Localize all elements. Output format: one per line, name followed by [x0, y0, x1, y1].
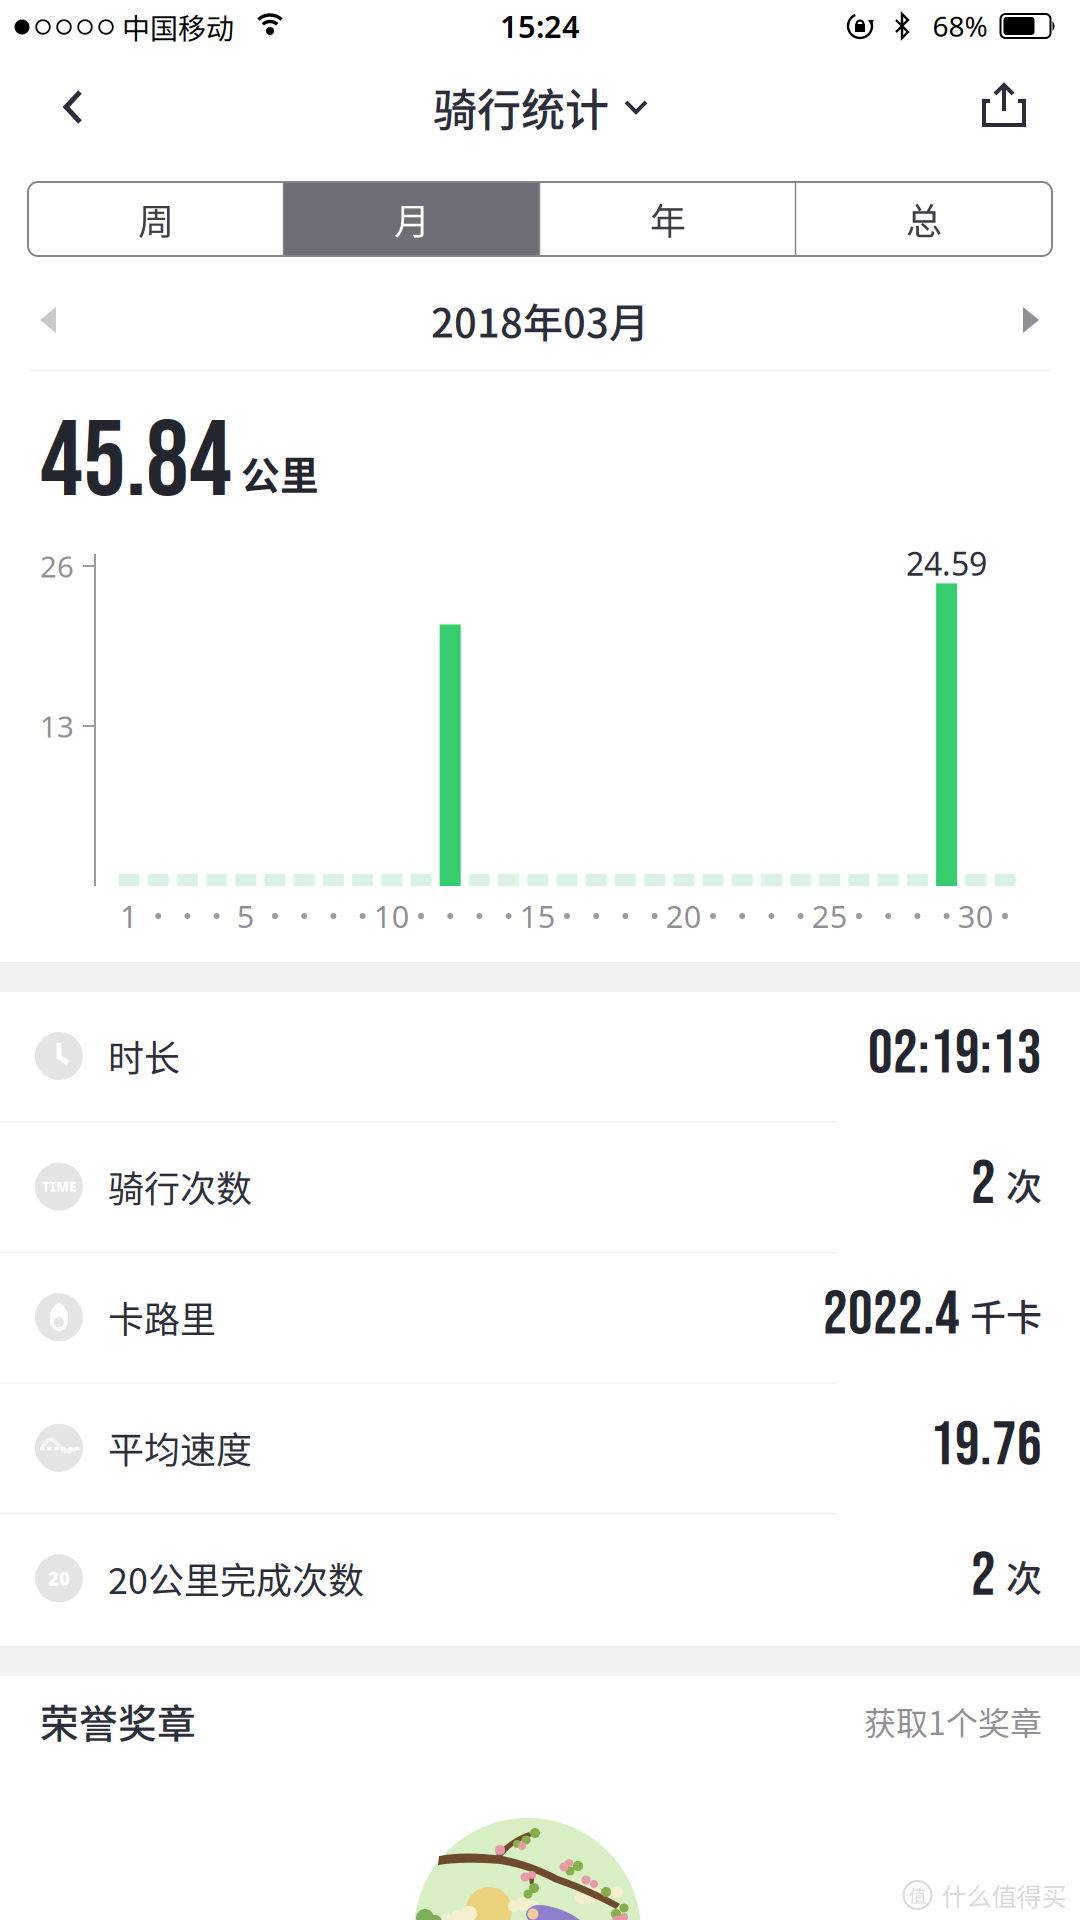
- staticText: 什么值得买: [941, 1877, 1066, 1913]
- staticText: 年: [650, 193, 686, 245]
- staticText: 获取1个奖章: [864, 1698, 1042, 1744]
- staticText: 20: [48, 1566, 70, 1591]
- staticText: 5: [237, 896, 255, 936]
- staticText: 10: [374, 896, 410, 936]
- button[interactable]: 年: [540, 182, 796, 256]
- button[interactable]: 获取1个奖章: [864, 1698, 1042, 1744]
- button[interactable]: 时长: [0, 992, 1080, 1122]
- staticText: 2: [971, 1148, 996, 1221]
- staticText: 总: [906, 193, 942, 245]
- button[interactable]: Share: [984, 85, 1024, 127]
- staticText: 值: [909, 1882, 926, 1908]
- staticText: 20: [666, 896, 702, 936]
- staticText: 月: [394, 193, 430, 245]
- staticText: 2022.4: [823, 1278, 960, 1352]
- staticText: 骑行次数: [108, 1160, 252, 1213]
- button[interactable]: Previous month: [40, 307, 56, 333]
- staticText: 26: [40, 546, 74, 585]
- staticText: 周: [138, 193, 174, 245]
- button[interactable]: 总: [796, 182, 1052, 256]
- staticText: 次: [1006, 1550, 1042, 1602]
- staticText: 骑行统计: [433, 75, 609, 139]
- button[interactable]: 卡路里: [0, 1253, 1080, 1383]
- staticText: 24.59: [906, 542, 987, 585]
- staticText: 2018年03月: [431, 291, 649, 349]
- staticText: 卡路里: [108, 1291, 216, 1343]
- staticText: 68%: [932, 7, 987, 45]
- staticText: 荣誉奖章: [40, 1693, 196, 1749]
- button[interactable]: 平均速度: [0, 1384, 1080, 1514]
- staticText: 25: [812, 896, 848, 936]
- button[interactable]: 周: [28, 182, 284, 256]
- staticText: 02:19:13: [868, 1017, 1042, 1091]
- staticText: 19.76: [930, 1409, 1042, 1483]
- staticText: 1: [120, 896, 138, 936]
- staticText: 千卡: [970, 1289, 1042, 1341]
- staticText: 45.84: [40, 399, 232, 527]
- button[interactable]: Back: [58, 86, 102, 130]
- staticText: 平均速度: [108, 1422, 252, 1474]
- button[interactable]: Next month: [1023, 307, 1039, 333]
- staticText: 15:24: [500, 6, 580, 46]
- button[interactable]: 骑行次数: [0, 1123, 1080, 1253]
- staticText: 15: [520, 896, 556, 936]
- staticText: 20公里完成次数: [108, 1552, 364, 1604]
- button[interactable]: 骑行统计: [433, 75, 647, 139]
- staticText: 时长: [108, 1030, 180, 1082]
- staticText: TIME: [42, 1178, 76, 1195]
- staticText: 中国移动: [122, 7, 234, 47]
- staticText: 13: [40, 706, 74, 745]
- button[interactable]: 月: [284, 182, 540, 256]
- staticText: 次: [1006, 1158, 1042, 1211]
- staticText: 2: [971, 1540, 996, 1613]
- staticText: 30: [958, 896, 994, 936]
- button[interactable]: 20公里完成次数: [0, 1514, 1080, 1644]
- staticText: 公里: [241, 445, 319, 501]
